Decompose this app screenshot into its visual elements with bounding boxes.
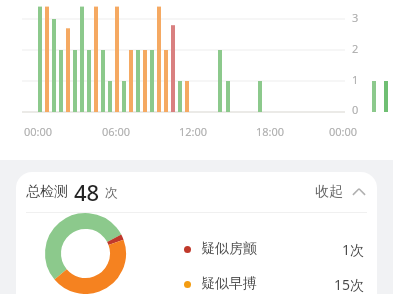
staticText: 15次 [334,275,365,294]
staticText: 1次 [342,240,365,259]
staticText: 12:00 [179,124,208,139]
button[interactable]: 疑似早搏 [184,274,365,294]
staticText: 1 [352,72,359,87]
staticText: 收起 [315,183,343,201]
button[interactable]: 疑似房颤 [184,238,365,260]
other: Collapse [351,184,367,200]
staticText: 06:00 [102,124,131,139]
staticText: 48 [74,177,100,207]
staticText: 疑似早搏 [201,275,257,293]
staticText: 18:00 [256,124,285,139]
button[interactable]: 总检测 [16,172,377,212]
staticText: 次 [105,184,118,200]
staticText: 2 [352,41,359,56]
staticText: 00:00 [24,124,53,139]
staticText: 00:00 [329,124,358,139]
staticText: 3 [352,10,359,25]
staticText: 总检测 [26,183,68,201]
staticText: 0 [352,102,359,117]
staticText: 疑似房颤 [201,240,257,258]
